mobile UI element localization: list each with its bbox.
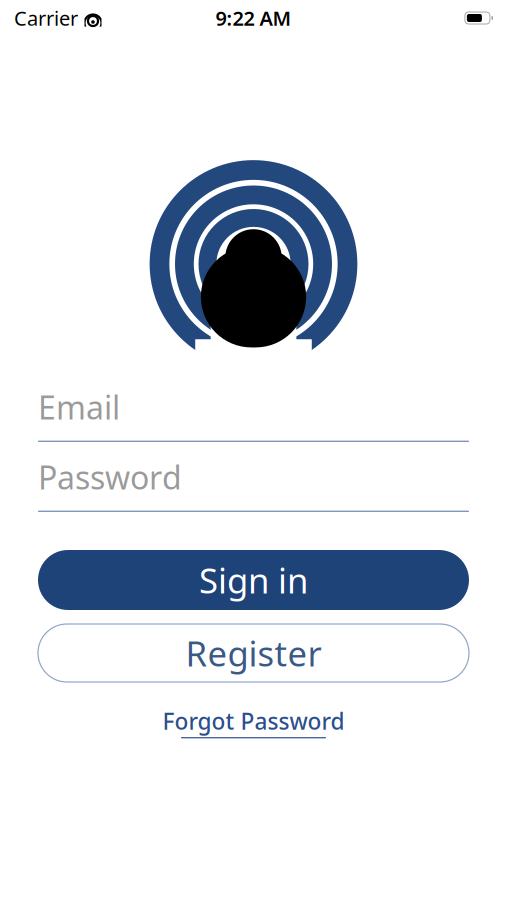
staticText: Sign in bbox=[199, 557, 308, 603]
button[interactable]: Register bbox=[38, 624, 469, 682]
button[interactable]: Forgot Password bbox=[152, 702, 354, 742]
staticText: 9:22 AM bbox=[215, 5, 291, 31]
staticText: Register bbox=[185, 630, 321, 676]
staticText: Forgot Password bbox=[162, 706, 344, 736]
staticText: Carrier bbox=[14, 5, 78, 31]
staticText: Password bbox=[38, 456, 182, 498]
button[interactable]: Sign in bbox=[38, 550, 469, 610]
staticText: Email bbox=[38, 386, 120, 428]
